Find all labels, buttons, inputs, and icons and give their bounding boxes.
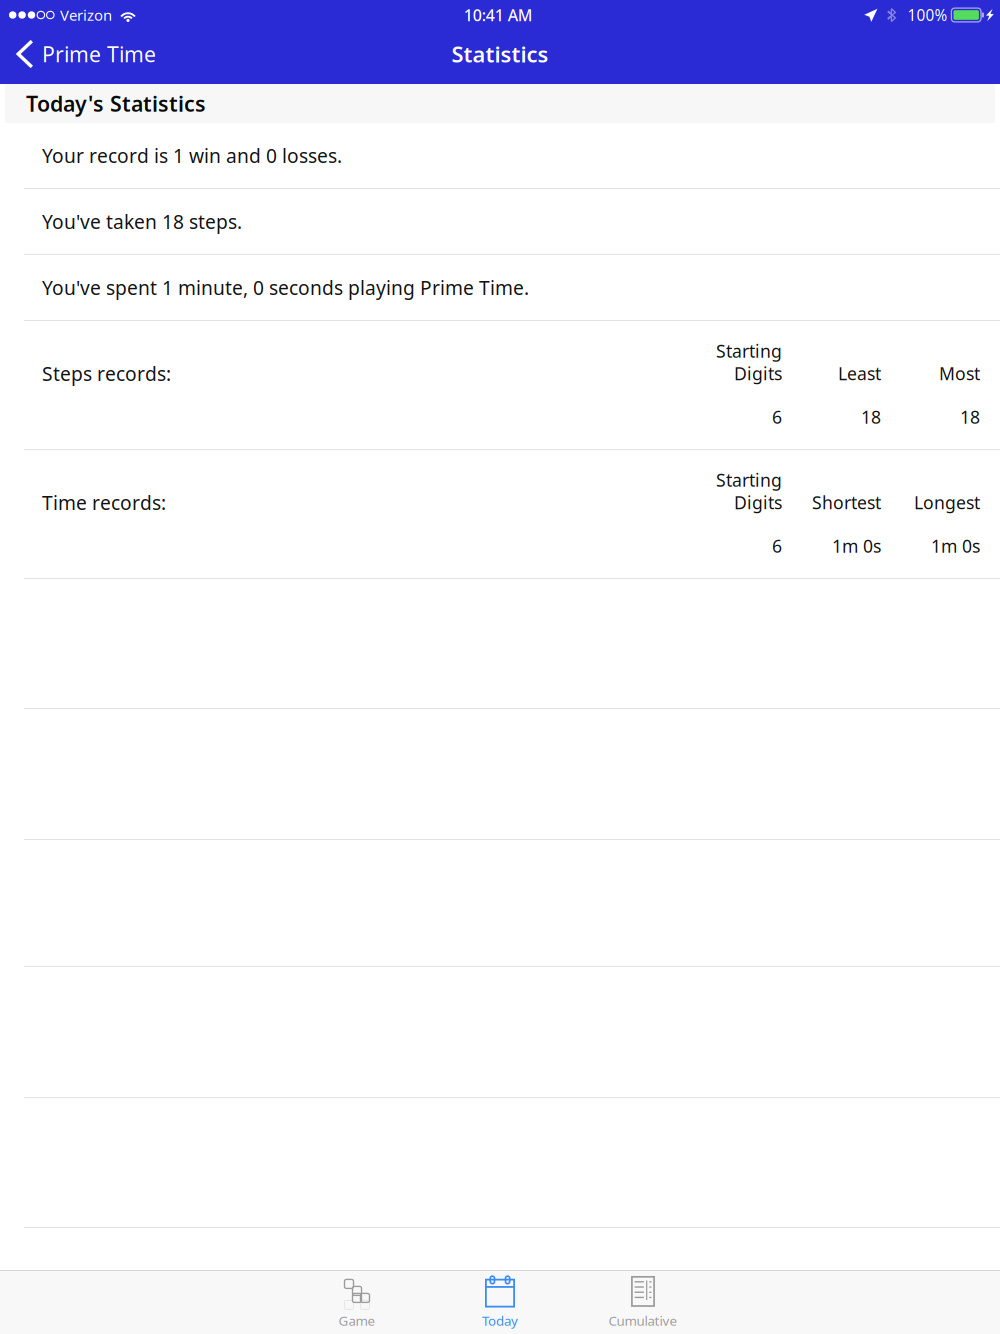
staticText: 6 [772, 405, 782, 429]
staticText: 6 [772, 534, 782, 558]
button[interactable]: Today [445, 1271, 555, 1334]
staticText: You've taken 18 steps. [42, 208, 242, 235]
button[interactable]: Cumulative [588, 1271, 698, 1334]
staticText: Starting [716, 468, 782, 492]
staticText: Verizon [60, 5, 112, 25]
staticText: Most [939, 361, 980, 385]
staticText: Starting [716, 339, 782, 363]
staticText: 100% [907, 5, 947, 25]
staticText: Prime Time [42, 40, 156, 68]
button[interactable]: Prime Time [0, 35, 166, 78]
staticText: Today [482, 1311, 518, 1330]
staticText: You've spent 1 minute, 0 seconds playing… [42, 274, 529, 301]
staticText: 10:41 AM [464, 4, 533, 26]
button[interactable]: Game [302, 1271, 412, 1334]
staticText: Least [838, 361, 881, 385]
staticText: 18 [960, 405, 980, 429]
staticText: Game [338, 1311, 375, 1330]
staticText: Time records: [42, 489, 166, 516]
staticText: Statistics [451, 39, 548, 69]
staticText: Steps records: [42, 360, 171, 387]
staticText: Today's Statistics [26, 89, 206, 118]
staticText: Cumulative [608, 1311, 677, 1330]
staticText: 1m 0s [931, 534, 980, 558]
staticText: Digits [734, 490, 782, 514]
staticText: Your record is 1 win and 0 losses. [42, 142, 342, 169]
staticText: 18 [861, 405, 881, 429]
staticText: Digits [734, 361, 782, 385]
staticText: Longest [914, 490, 980, 514]
staticText: 1m 0s [832, 534, 881, 558]
staticText: Shortest [812, 490, 881, 514]
